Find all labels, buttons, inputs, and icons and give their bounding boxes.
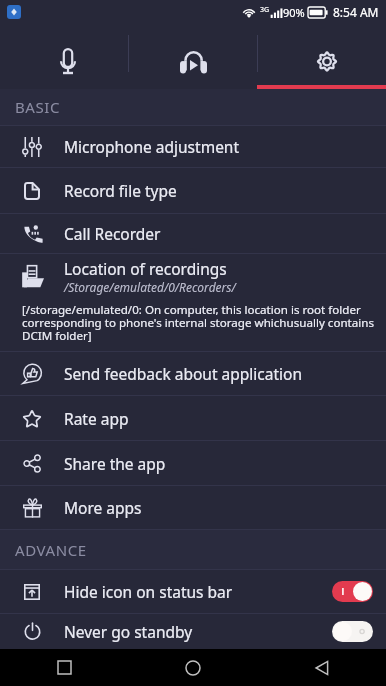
staticText: Share the app <box>64 453 166 474</box>
button[interactable]: Back <box>257 649 386 686</box>
staticText: [/storage/emulated/0: On computer, this … <box>22 302 380 344</box>
staticText: More apps <box>64 497 142 518</box>
button[interactable]: Record <box>0 24 128 85</box>
button[interactable]: Microphone adjustment <box>0 126 386 167</box>
button[interactable]: Off <box>332 621 373 642</box>
staticText: Hide icon on status bar <box>64 581 233 602</box>
button[interactable]: Never go standby <box>0 614 386 649</box>
staticText: 90% <box>283 5 305 20</box>
button[interactable]: On <box>332 581 373 602</box>
button[interactable]: Recents <box>0 649 128 686</box>
button[interactable]: Share the app <box>0 441 386 485</box>
staticText: Never go standby <box>64 621 193 642</box>
staticText: Record file type <box>64 180 177 201</box>
staticText: /Storage/emulated/0/Recorders/ <box>64 279 236 295</box>
button[interactable]: Call Recorder <box>0 214 386 253</box>
staticText: 3G <box>260 5 270 15</box>
button[interactable]: Record file type <box>0 168 386 213</box>
button[interactable]: Rate app <box>0 396 386 440</box>
button[interactable]: Home <box>128 649 257 686</box>
button[interactable]: Hide icon on status bar <box>0 570 386 613</box>
staticText: Send feedback about application <box>64 363 302 384</box>
button[interactable]: Location of recordings <box>0 254 386 351</box>
button[interactable]: Settings <box>257 24 386 85</box>
staticText: Rate app <box>64 408 129 429</box>
button[interactable]: Play <box>128 24 257 85</box>
staticText: Microphone adjustment <box>64 136 240 157</box>
staticText: 8:54 AM <box>333 4 379 20</box>
button[interactable]: Send feedback about application <box>0 352 386 395</box>
staticText: Call Recorder <box>64 223 161 244</box>
button[interactable]: More apps <box>0 486 386 529</box>
staticText: BASIC <box>15 97 61 117</box>
staticText: Location of recordings <box>64 258 227 279</box>
staticText: ADVANCE <box>15 540 87 560</box>
